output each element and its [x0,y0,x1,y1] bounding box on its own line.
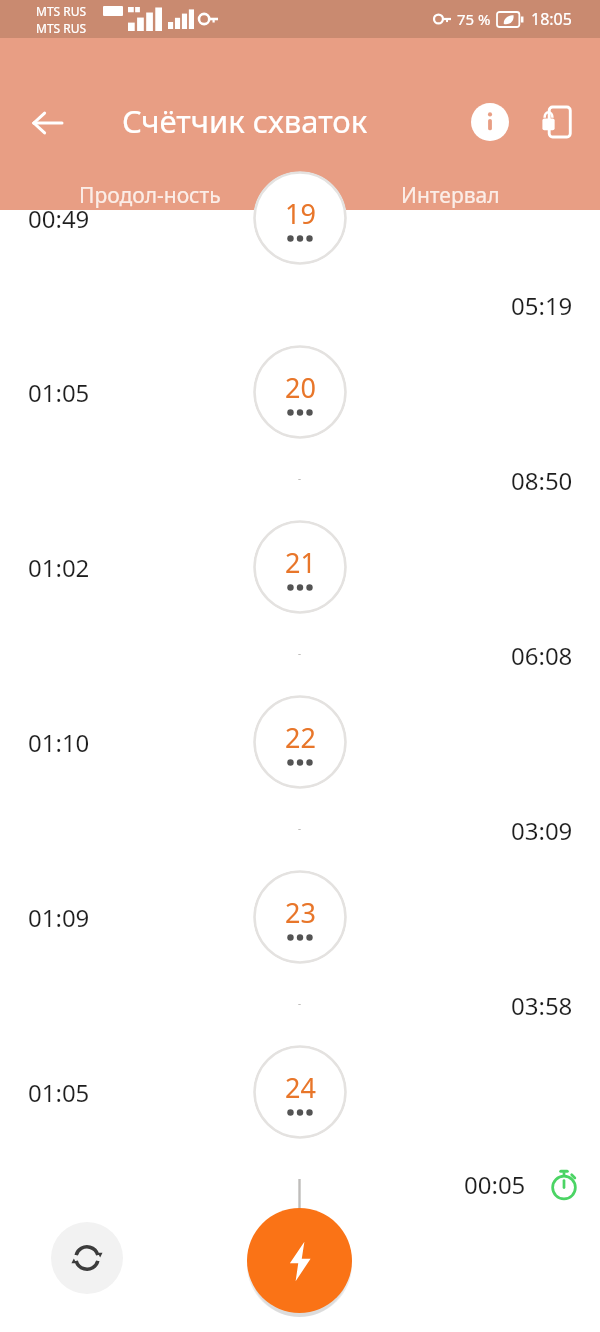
button[interactable]: Интервал [300,180,600,210]
staticText: 03:09 [511,814,573,847]
staticText: 05:19 [511,289,573,322]
staticText: 01:02 [28,551,90,584]
button[interactable]: 20 [253,345,347,439]
button[interactable]: Back [18,94,76,152]
staticText: 00:05 [464,1168,526,1201]
staticText: 18:05 [531,8,572,30]
button[interactable]: Info [462,94,518,150]
staticText: 01:05 [28,1076,90,1109]
staticText: 75 % [457,9,491,29]
button[interactable]: 22 [253,695,347,789]
staticText: 00:49 [28,202,90,235]
button[interactable]: Reset [51,1222,123,1294]
staticText: Счётчик схваток [122,100,368,142]
button[interactable]: 21 [253,520,347,614]
staticText: 06:08 [511,639,573,672]
staticText: 01:05 [28,376,90,409]
staticText: 01:09 [28,901,90,934]
staticText: 03:58 [511,989,573,1022]
staticText: MTS RUS [36,3,87,19]
button[interactable]: 23 [253,870,347,964]
staticText: 08:50 [511,464,573,497]
button[interactable]: 24 [253,1045,347,1139]
button[interactable]: 19 [253,171,347,265]
staticText: 23 [285,894,316,931]
staticText: 22 [285,719,316,756]
staticText: 01:10 [28,726,90,759]
staticText: Продол-ность [79,181,221,210]
staticText: Интервал [401,181,500,210]
button[interactable]: Keep screen on [528,94,584,150]
staticText: 21 [285,544,316,581]
staticText: MTS RUS [36,20,87,36]
staticText: 20 [285,369,316,406]
button[interactable]: Продол-ность [0,180,300,210]
staticText: 24 [285,1069,316,1106]
button[interactable]: Start contraction [247,1208,352,1313]
staticText: 19 [285,195,316,232]
